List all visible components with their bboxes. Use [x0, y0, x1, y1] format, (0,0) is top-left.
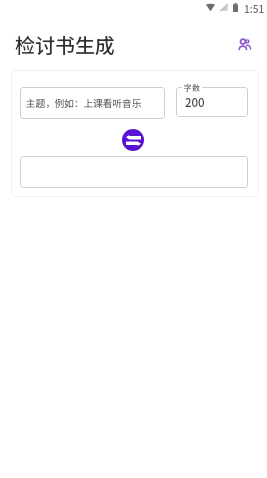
button[interactable]: 200	[176, 87, 248, 117]
staticText: 主题，例如：上课看听音乐	[26, 96, 142, 110]
button[interactable]	[20, 156, 248, 188]
button[interactable]: Account	[231, 31, 257, 57]
button[interactable]: Swap	[122, 129, 144, 151]
staticText: 1:51	[244, 1, 265, 15]
staticText: 字数	[184, 82, 200, 94]
button[interactable]: 主题，例如：上课看听音乐	[20, 87, 165, 119]
staticText: 检讨书生成	[15, 30, 115, 59]
staticText: 200	[185, 94, 205, 111]
